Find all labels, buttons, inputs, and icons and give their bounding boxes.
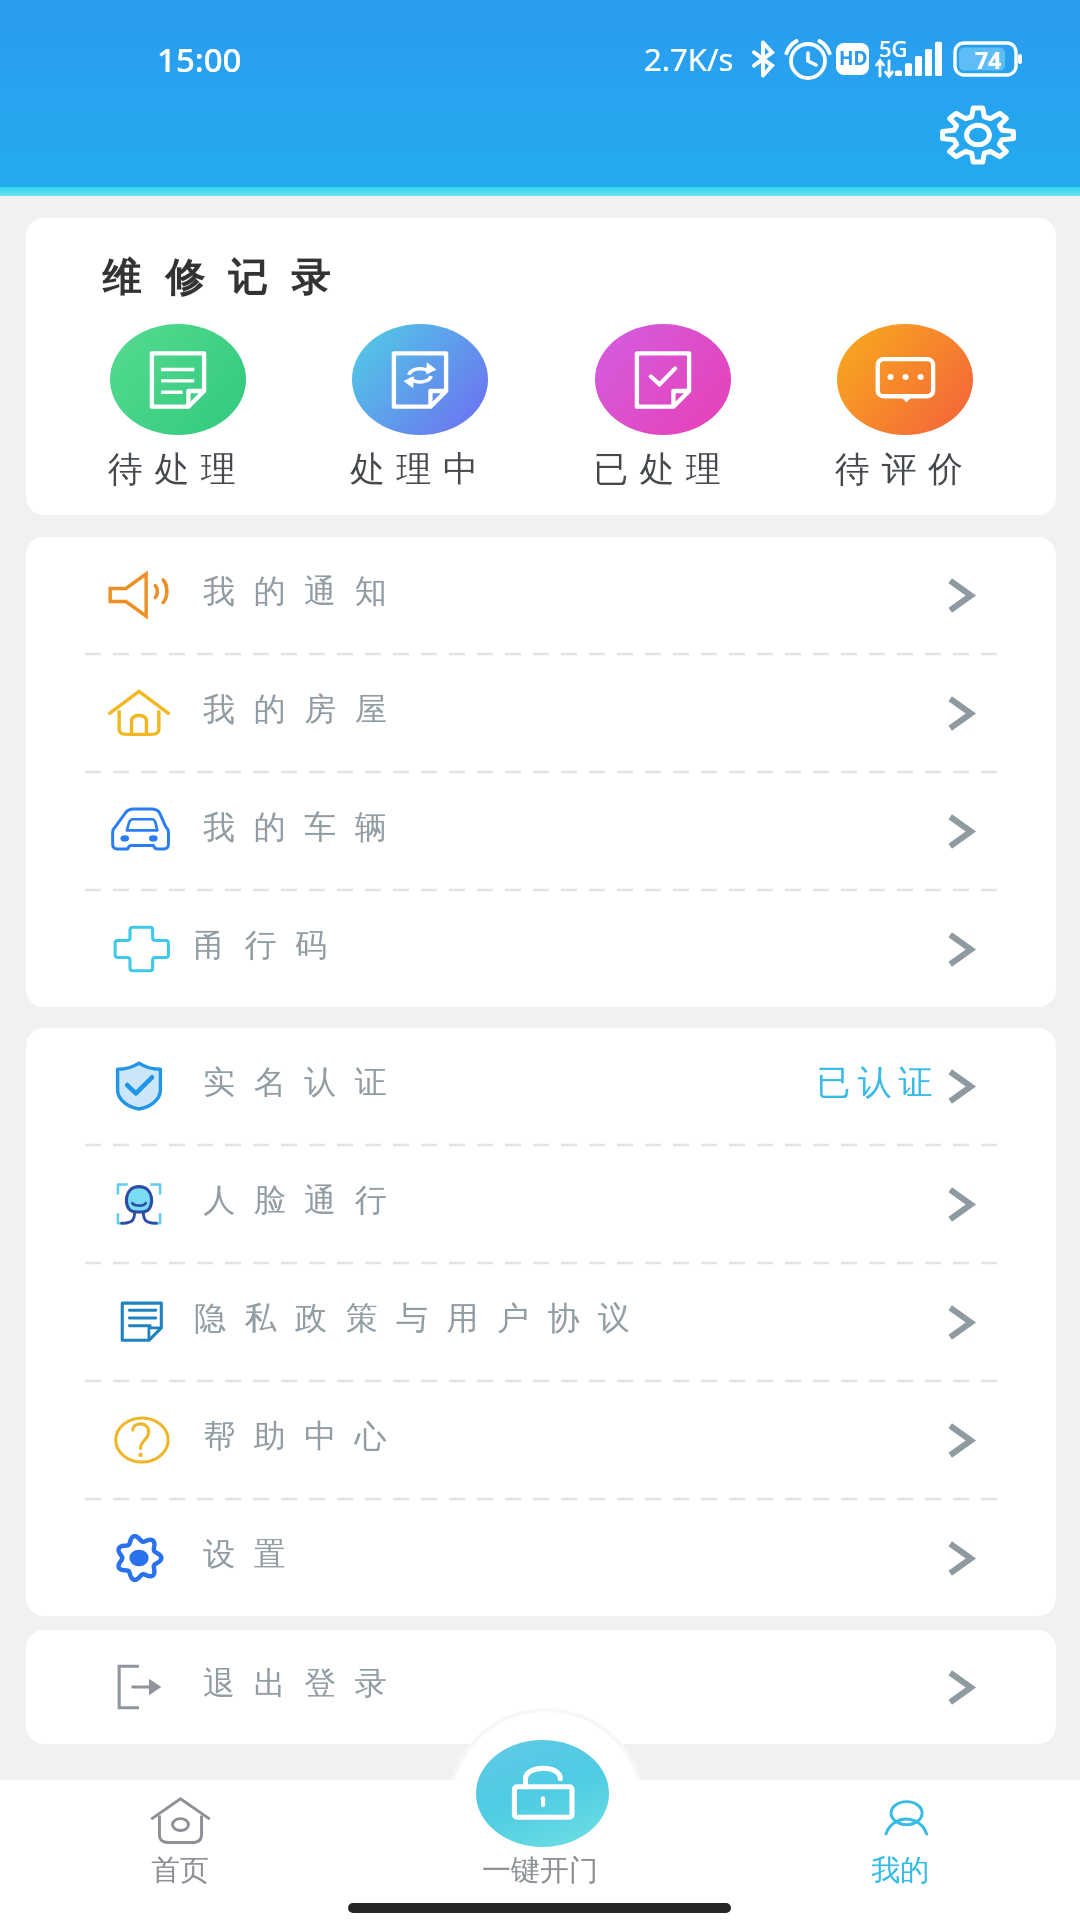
button[interactable]: 我的车辆 — [26, 773, 1056, 889]
button[interactable]: One key open door — [476, 1740, 609, 1847]
button[interactable]: 处理中 — [350, 324, 490, 491]
button[interactable]: 我的通知 — [26, 537, 1056, 653]
button[interactable]: 我的 — [720, 1780, 1080, 1920]
staticText: 已认证 — [813, 1061, 936, 1104]
staticText: 我的房屋 — [194, 689, 396, 729]
staticText: 人脸通行 — [194, 1180, 396, 1220]
staticText: 一键开门 — [482, 1852, 598, 1889]
staticText: 待处理 — [108, 447, 248, 491]
button[interactable]: 实名认证 — [26, 1028, 1056, 1144]
button[interactable]: 一键开门 — [360, 1780, 720, 1920]
staticText: 实名认证 — [194, 1062, 396, 1102]
button[interactable]: 甬行码 — [26, 891, 1056, 1007]
staticText: 15:00 — [157, 37, 242, 82]
button[interactable]: 退出登录 — [26, 1630, 1056, 1744]
staticText: 待评价 — [835, 447, 975, 491]
staticText: HD — [839, 45, 868, 71]
staticText: 设置 — [194, 1534, 295, 1574]
staticText: 5G — [879, 33, 908, 63]
staticText: 隐私政策与用户协议 — [194, 1298, 649, 1338]
staticText: 处理中 — [350, 447, 490, 491]
button[interactable]: Settings — [929, 95, 1027, 175]
staticText: 维修记录 — [90, 253, 342, 302]
staticText: 首页 — [151, 1852, 209, 1889]
staticText: 我的通知 — [194, 571, 396, 611]
staticText: 已处理 — [593, 447, 733, 491]
button[interactable]: 帮助中心 — [26, 1382, 1056, 1498]
staticText: 我的 — [871, 1852, 929, 1889]
button[interactable]: 已处理 — [593, 324, 733, 491]
button[interactable]: 人脸通行 — [26, 1146, 1056, 1262]
staticText: 我的车辆 — [194, 807, 396, 847]
staticText: 74 — [975, 44, 1002, 75]
button[interactable]: 首页 — [0, 1780, 360, 1920]
staticText: 帮助中心 — [194, 1416, 396, 1456]
button[interactable]: 待处理 — [108, 324, 248, 491]
button[interactable]: 待评价 — [835, 324, 975, 491]
button[interactable]: 设置 — [26, 1500, 1056, 1616]
staticText: 退出登录 — [194, 1663, 396, 1703]
staticText: 2.7K/s — [644, 38, 734, 80]
staticText: 甬行码 — [194, 925, 346, 965]
button[interactable]: 隐私政策与用户协议 — [26, 1264, 1056, 1380]
button[interactable]: 我的房屋 — [26, 655, 1056, 771]
